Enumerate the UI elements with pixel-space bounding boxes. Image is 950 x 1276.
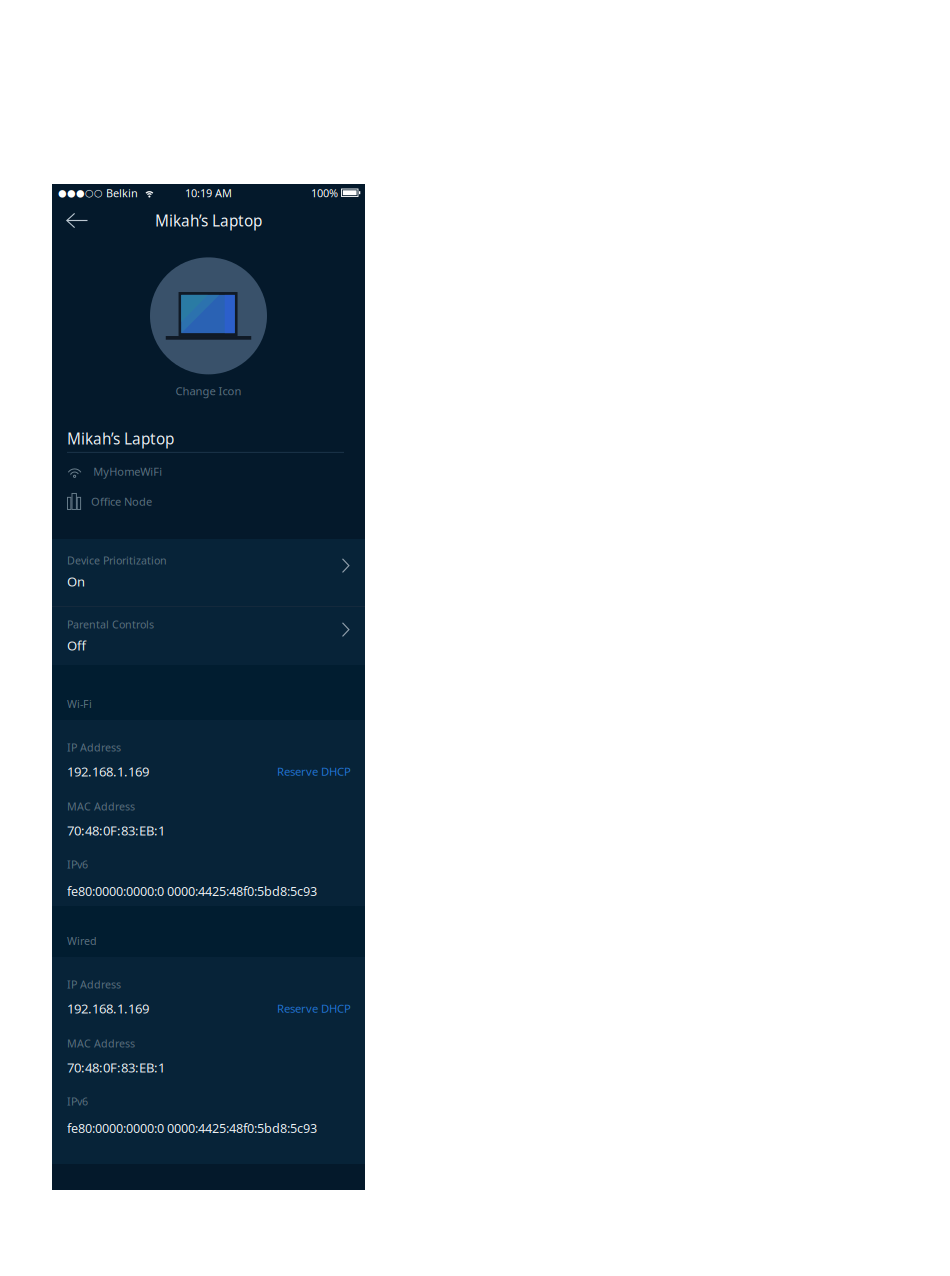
- staticText: MAC Address: [67, 1036, 135, 1050]
- staticText: IPv6: [67, 857, 88, 871]
- button[interactable]: Parental Controls: [52, 607, 365, 665]
- staticText: Mikah’s Laptop: [155, 210, 262, 231]
- staticText: MAC Address: [67, 799, 135, 813]
- button[interactable]: Reserve DHCP: [277, 1001, 351, 1016]
- staticText: ●●●○○: [58, 187, 103, 199]
- staticText: 192.168.1.169: [67, 762, 149, 780]
- staticText: 70:48:0F:83:EB:1: [67, 821, 165, 839]
- staticText: MyHomeWiFi: [93, 464, 162, 479]
- staticText: Device Prioritization: [67, 553, 167, 567]
- staticText: Change Icon: [175, 383, 241, 399]
- staticText: IPv6: [67, 1094, 88, 1108]
- button[interactable]: Device Prioritization: [52, 539, 365, 606]
- staticText: Parental Controls: [67, 617, 154, 631]
- staticText: fe80:0000:0000:0 0000:4425:48f0:5bd8:5c9…: [67, 882, 317, 900]
- staticText: 192.168.1.169: [67, 999, 149, 1017]
- staticText: Wired: [67, 933, 97, 948]
- staticText: 100%: [311, 186, 338, 200]
- staticText: fe80:0000:0000:0 0000:4425:48f0:5bd8:5c9…: [67, 1119, 317, 1137]
- staticText: Reserve DHCP: [277, 1001, 351, 1016]
- staticText: On: [67, 572, 85, 590]
- button[interactable]: Change Icon: [52, 245, 365, 412]
- staticText: Off: [67, 636, 86, 654]
- staticText: Belkin: [103, 186, 138, 200]
- staticText: Office Node: [91, 494, 152, 509]
- staticText: IP Address: [67, 740, 121, 754]
- button[interactable]: Back: [52, 205, 100, 241]
- staticText: IP Address: [67, 977, 121, 991]
- staticText: 70:48:0F:83:EB:1: [67, 1058, 165, 1076]
- button[interactable]: Reserve DHCP: [277, 764, 351, 779]
- staticText: Wi-Fi: [67, 696, 92, 711]
- staticText: Mikah’s Laptop: [67, 428, 174, 449]
- staticText: Reserve DHCP: [277, 764, 351, 779]
- button[interactable]: Mikah’s Laptop: [67, 428, 344, 453]
- staticText: 10:19 AM: [185, 186, 232, 200]
